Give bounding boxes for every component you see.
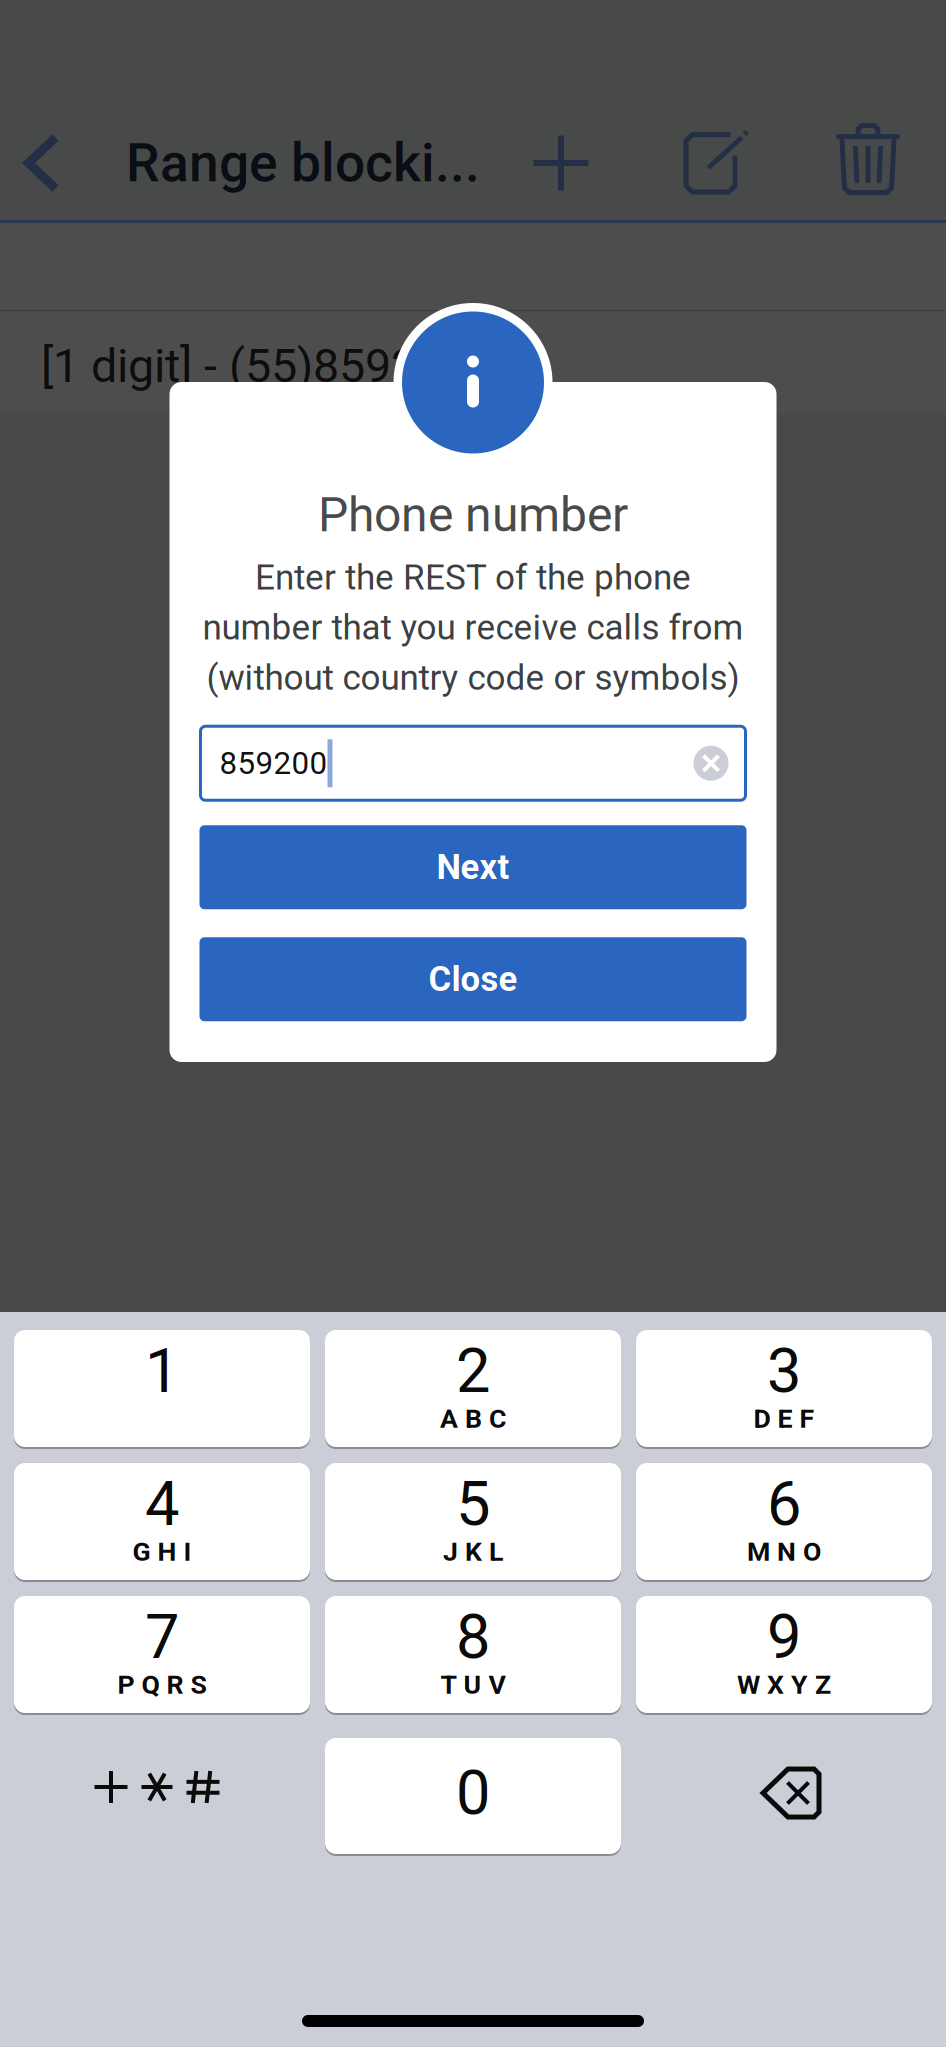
button[interactable]: [1 digit] - (55)8592000	[0, 311, 946, 413]
staticText: A B C	[440, 1403, 506, 1434]
button[interactable]: Close	[199, 937, 746, 1021]
staticText: J K L	[443, 1536, 503, 1567]
button[interactable]: 1	[14, 1330, 310, 1447]
staticText: Phone number	[318, 487, 628, 543]
staticText: 3	[767, 1335, 801, 1407]
button[interactable]: Back	[0, 113, 88, 213]
staticText: M N O	[747, 1536, 821, 1567]
staticText: T U V	[440, 1669, 505, 1700]
staticText: 7	[145, 1601, 179, 1673]
button[interactable]: 8	[325, 1596, 621, 1713]
staticText: 1	[145, 1335, 179, 1407]
button[interactable]: 5	[325, 1463, 621, 1580]
staticText: Enter the REST of the phone	[255, 557, 691, 598]
button[interactable]: Edit	[667, 111, 767, 211]
staticText: Next	[436, 847, 509, 888]
button[interactable]: Delete	[818, 109, 918, 209]
staticText: Range blocki...	[126, 132, 480, 194]
staticText: 4	[145, 1468, 179, 1540]
button[interactable]: Add	[511, 113, 611, 213]
staticText: 5	[456, 1468, 490, 1540]
staticText: P Q R S	[117, 1669, 206, 1700]
staticText: (without country code or symbols)	[206, 657, 739, 698]
staticText: D E F	[753, 1403, 814, 1434]
staticText: [1 digit] - (55)8592000	[41, 339, 495, 393]
staticText: 859200	[219, 745, 327, 782]
button[interactable]: 9	[636, 1596, 932, 1713]
staticText: 8	[456, 1601, 490, 1673]
button[interactable]: Next	[199, 825, 746, 909]
button[interactable]: 2	[325, 1330, 621, 1447]
staticText: W X Y Z	[737, 1669, 831, 1700]
staticText: 6	[767, 1468, 801, 1540]
staticText: Close	[428, 959, 517, 1000]
button[interactable]: Delete	[636, 1738, 932, 1854]
staticText: 0	[456, 1757, 490, 1829]
button[interactable]: 7	[14, 1596, 310, 1713]
staticText: number that you receive calls from	[202, 607, 743, 648]
staticText: G H I	[132, 1536, 191, 1567]
staticText: 9	[767, 1601, 801, 1673]
button[interactable]: 6	[636, 1463, 932, 1580]
button[interactable]: Symbols	[14, 1738, 310, 1854]
button[interactable]: 4	[14, 1463, 310, 1580]
staticText: 2	[456, 1335, 490, 1407]
button[interactable]: 3	[636, 1330, 932, 1447]
